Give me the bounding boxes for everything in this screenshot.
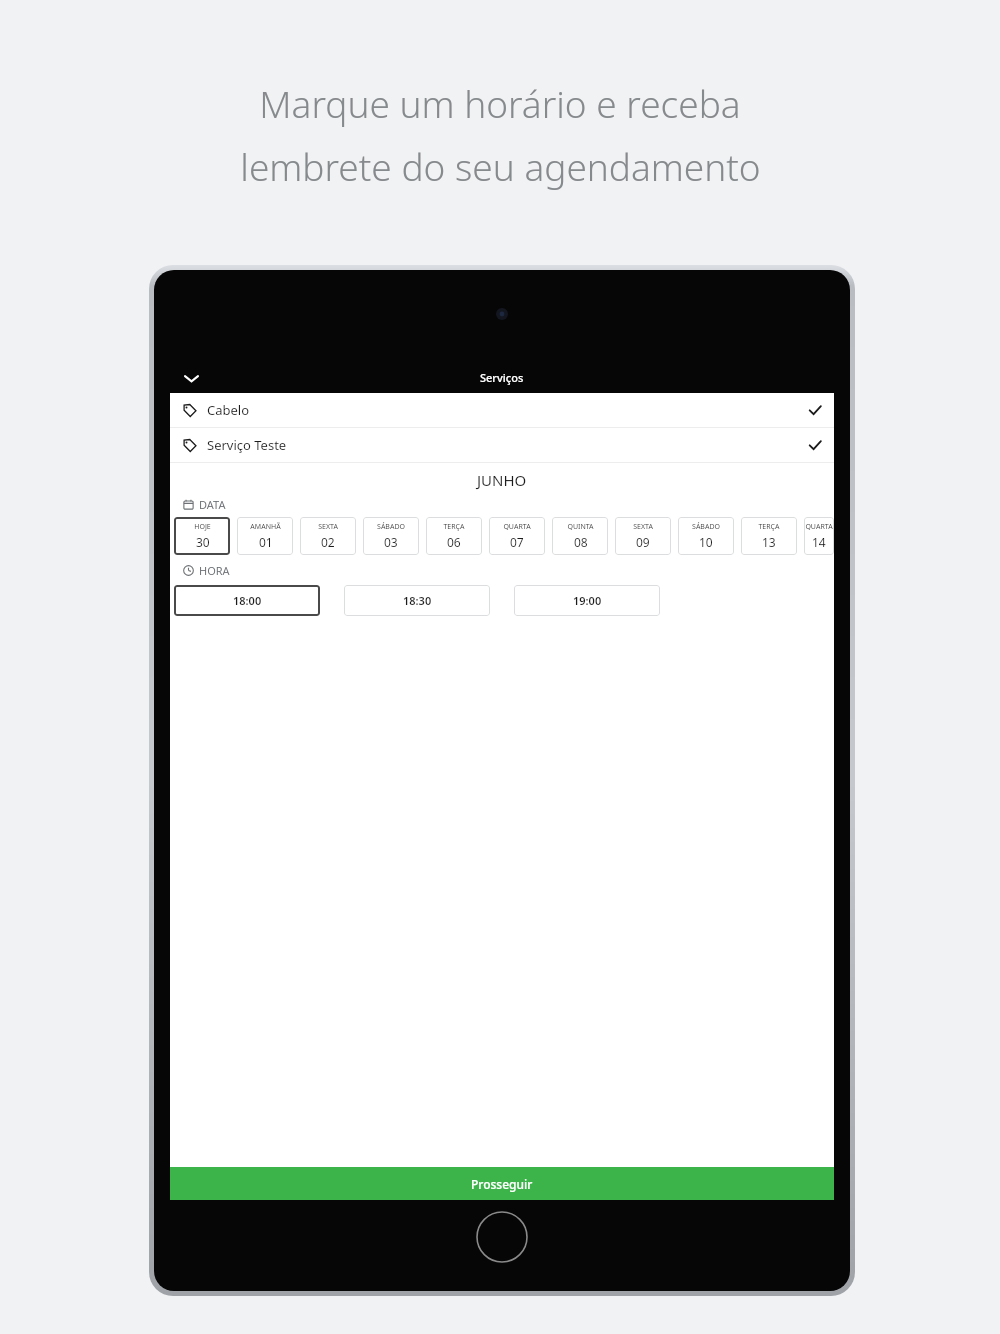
- button[interactable]: SEXTA: [615, 517, 671, 555]
- staticText: HORA: [199, 563, 230, 578]
- button[interactable]: SEXTA: [300, 517, 356, 555]
- staticText: QUINTA: [567, 522, 594, 532]
- staticText: Prosseguir: [471, 1176, 533, 1192]
- button[interactable]: Fechar: [176, 363, 206, 393]
- staticText: Cabelo: [207, 401, 250, 419]
- button[interactable]: 18:00: [174, 585, 320, 616]
- staticText: 08: [574, 534, 588, 550]
- staticText: lembrete do seu agendamento: [240, 141, 761, 191]
- button[interactable]: QUINTA: [552, 517, 608, 555]
- button[interactable]: TERÇA: [426, 517, 482, 555]
- staticText: 02: [321, 534, 335, 550]
- staticText: 14: [812, 534, 826, 550]
- button[interactable]: TERÇA: [741, 517, 797, 555]
- button[interactable]: QUARTA: [489, 517, 545, 555]
- button[interactable]: Prosseguir: [170, 1167, 834, 1200]
- button[interactable]: Cabelo: [170, 393, 834, 427]
- staticText: 03: [384, 534, 398, 550]
- staticText: 18:00: [233, 593, 262, 608]
- button[interactable]: QUARTA: [804, 517, 834, 555]
- staticText: 01: [259, 534, 273, 550]
- staticText: 13: [762, 534, 776, 550]
- staticText: Marque um horário e receba: [259, 78, 741, 128]
- staticText: SEXTA: [633, 522, 653, 532]
- staticText: 19:00: [573, 593, 602, 608]
- button[interactable]: Serviço Teste: [170, 428, 834, 462]
- button[interactable]: 19:00: [514, 585, 660, 616]
- staticText: 10: [699, 534, 713, 550]
- button[interactable]: SÁBADO: [363, 517, 419, 555]
- staticText: Serviços: [480, 370, 524, 385]
- staticText: 18:30: [403, 593, 432, 608]
- staticText: TERÇA: [443, 522, 465, 532]
- button[interactable]: HOJE: [174, 517, 230, 555]
- button[interactable]: 18:30: [344, 585, 490, 616]
- staticText: 07: [510, 534, 524, 550]
- staticText: DATA: [199, 497, 226, 512]
- staticText: 06: [447, 534, 461, 550]
- button[interactable]: SÁBADO: [678, 517, 734, 555]
- button[interactable]: AMANHÃ: [237, 517, 293, 555]
- staticText: SÁBADO: [692, 522, 720, 532]
- staticText: QUARTA: [503, 522, 531, 532]
- staticText: 09: [636, 534, 650, 550]
- staticText: QUARTA: [805, 522, 833, 532]
- staticText: Serviço Teste: [207, 436, 287, 454]
- staticText: JUNHO: [477, 470, 527, 490]
- staticText: SEXTA: [318, 522, 338, 532]
- staticText: AMANHÃ: [250, 522, 281, 532]
- staticText: TERÇA: [758, 522, 780, 532]
- staticText: HOJE: [194, 522, 211, 532]
- staticText: 30: [196, 534, 210, 550]
- staticText: SÁBADO: [377, 522, 405, 532]
